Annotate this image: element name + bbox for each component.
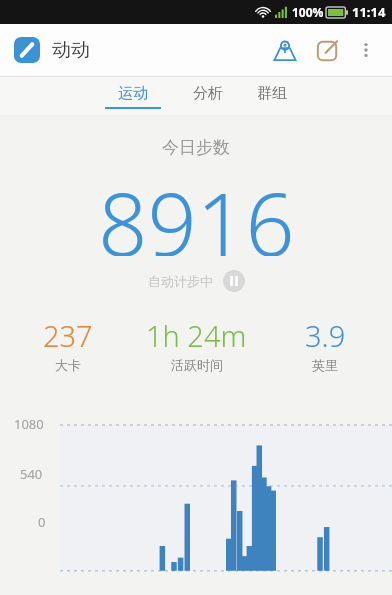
staticText: 分析 [193, 84, 223, 103]
button[interactable]: 群组 [251, 84, 293, 109]
staticText: 运动 [118, 84, 148, 103]
staticText: 0 [38, 513, 46, 531]
staticText: 自动计步中 [148, 273, 213, 289]
staticText: 1h 24m [146, 316, 247, 355]
button[interactable]: More options [348, 32, 384, 68]
staticText: 1080 [14, 415, 44, 433]
button[interactable]: 动动 logo [14, 37, 40, 63]
button[interactable]: 3.9 [268, 316, 382, 373]
button[interactable]: 237 [10, 316, 125, 373]
staticText: 8916 [98, 164, 295, 256]
staticText: 今日步数 [0, 137, 392, 158]
button[interactable]: 1h 24m [125, 316, 268, 373]
staticText: 动动 [52, 38, 90, 62]
staticText: 237 [43, 316, 93, 355]
button[interactable]: 运动 [99, 84, 167, 109]
button[interactable]: Map [264, 29, 306, 71]
staticText: 活跃时间 [171, 357, 223, 373]
button[interactable]: 分析 [187, 84, 229, 109]
staticText: 540 [20, 465, 43, 483]
staticText: 100% [292, 4, 324, 20]
staticText: 大卡 [55, 357, 81, 373]
staticText: 11:14 [352, 3, 386, 21]
button[interactable]: Edit [306, 29, 348, 71]
staticText: 群组 [257, 84, 287, 103]
staticText: 3.9 [305, 316, 346, 355]
staticText: 英里 [312, 357, 338, 373]
button[interactable]: Pause [223, 270, 245, 292]
